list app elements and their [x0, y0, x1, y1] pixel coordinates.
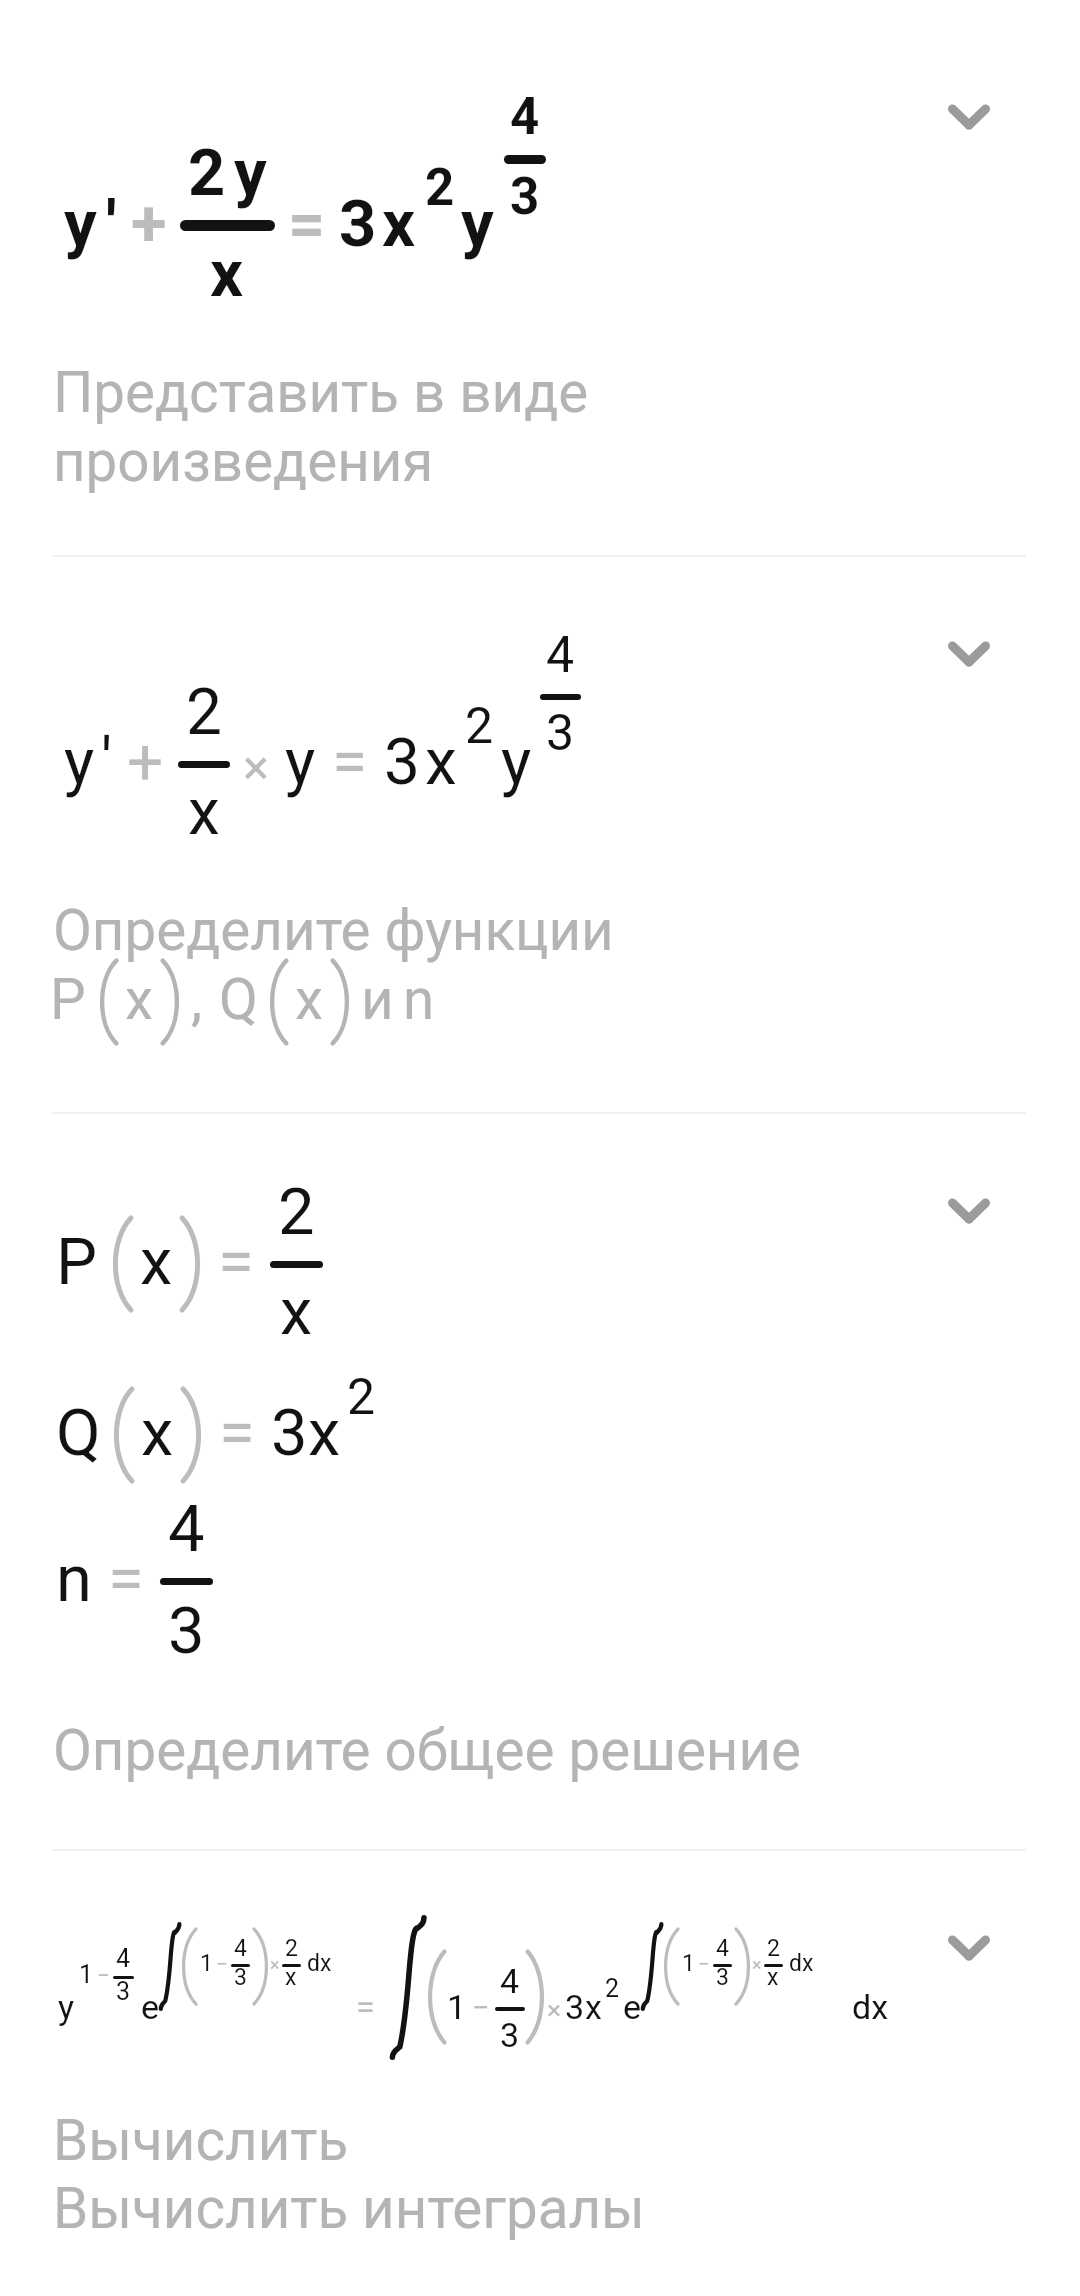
staticText: x [141, 1395, 174, 1471]
staticText: Определите общее решение [53, 1718, 801, 1784]
staticText: x [308, 1395, 341, 1471]
staticText: y [461, 186, 494, 262]
staticText: ' [106, 186, 117, 262]
staticText: x [425, 725, 457, 800]
staticText: x [210, 236, 244, 312]
staticText: Q [56, 1395, 101, 1471]
staticText: 3 [500, 2015, 520, 2055]
staticText: 3 [168, 1593, 205, 1669]
staticText: × [547, 1994, 562, 2025]
staticText: x [295, 967, 324, 1033]
staticText: e [141, 1987, 160, 2027]
staticText: 1 [447, 1987, 467, 2027]
button[interactable]: P [0, 1112, 1080, 1849]
staticText: 2 [347, 1368, 376, 1427]
staticText: x [285, 1964, 297, 1991]
staticText: dx [852, 1987, 889, 2027]
staticText: 3 [510, 167, 540, 227]
staticText: 3 [116, 1977, 131, 2006]
staticText: = [356, 1987, 375, 2027]
staticText: P [56, 1224, 98, 1300]
staticText: y [64, 186, 97, 262]
staticText: 4 [116, 1944, 131, 1973]
staticText: 2 [285, 1935, 298, 1962]
staticText: 2 [186, 675, 222, 750]
button[interactable]: y [0, 0, 1080, 556]
button[interactable]: y [0, 1849, 1080, 2296]
staticText: 4 [168, 1491, 205, 1567]
staticText: ' [101, 725, 113, 800]
button[interactable]: Свернуть шаг [919, 1908, 1019, 1988]
staticText: 3 [234, 1964, 247, 1991]
staticText: 2 [605, 1974, 620, 2003]
staticText: − [472, 1990, 490, 2026]
staticText: − [216, 1952, 228, 1976]
staticText: × [270, 1954, 280, 1975]
staticText: + [131, 186, 167, 262]
staticText: Вычислить [53, 2108, 349, 2174]
staticText: P [50, 967, 86, 1033]
staticText: e [623, 1987, 642, 2027]
staticText: 2 [188, 135, 226, 211]
staticText: = [332, 725, 368, 800]
staticText: 3 [716, 1964, 729, 1991]
staticText: − [97, 1962, 110, 1988]
staticText: 2 [278, 1174, 315, 1250]
staticText: 2 [425, 158, 455, 218]
staticText: n [56, 1541, 92, 1617]
staticText: 3 [339, 186, 377, 262]
staticText: + [127, 725, 164, 800]
staticText: Определите функции [53, 898, 614, 964]
button[interactable]: Свернуть шаг [919, 1171, 1019, 1251]
button[interactable]: y [0, 556, 1080, 1112]
staticText: 4 [546, 626, 575, 685]
staticText: 2 [465, 697, 494, 756]
staticText: x [125, 967, 154, 1033]
staticText: 1 [200, 1950, 213, 1977]
staticText: 4 [716, 1935, 729, 1962]
staticText: 4 [500, 1961, 520, 2001]
staticText: и [361, 967, 394, 1033]
staticText: x [188, 775, 220, 850]
staticText: 3 [384, 725, 420, 800]
staticText: = [219, 1395, 255, 1471]
staticText: × [752, 1954, 762, 1975]
staticText: 3 [565, 1987, 585, 2027]
staticText: x [280, 1274, 313, 1350]
staticText: x [585, 1987, 602, 2027]
staticText: , [191, 967, 203, 1033]
staticText: 4 [234, 1935, 247, 1962]
staticText: = [288, 186, 326, 262]
staticText: x [767, 1964, 779, 1991]
staticText: dx [307, 1950, 332, 1977]
staticText: 2 [767, 1935, 780, 1962]
staticText: 3 [546, 704, 575, 763]
staticText: 3 [271, 1395, 308, 1471]
staticText: y [64, 725, 95, 800]
staticText: y [58, 1987, 75, 2027]
staticText: dx [789, 1950, 814, 1977]
staticText: n [403, 967, 435, 1033]
staticText: произведения [53, 429, 434, 495]
staticText: y [285, 725, 316, 800]
staticText: y [234, 135, 267, 211]
button[interactable]: Свернуть шаг [919, 614, 1019, 694]
button[interactable]: Свернуть шаг [919, 77, 1019, 157]
staticText: x [140, 1224, 173, 1300]
staticText: = [108, 1541, 144, 1617]
staticText: × [243, 739, 269, 796]
staticText: = [218, 1224, 254, 1300]
staticText: 4 [510, 87, 540, 147]
staticText: Представить в виде [53, 360, 589, 426]
staticText: 1 [79, 1960, 94, 1989]
staticText: x [382, 186, 416, 262]
staticText: y [501, 725, 532, 800]
staticText: − [698, 1952, 710, 1976]
staticText: Q [219, 967, 258, 1033]
staticText: 1 [682, 1950, 695, 1977]
staticText: Вычислить интегралы [53, 2176, 645, 2242]
